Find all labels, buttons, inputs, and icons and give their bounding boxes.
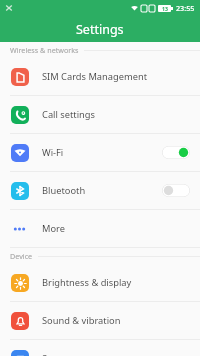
staticText: Call settings (42, 108, 190, 121)
staticText: Device (10, 251, 33, 261)
staticText: Settings (76, 21, 124, 38)
staticText: More (42, 222, 190, 235)
button[interactable]: Wi-Fi (0, 134, 200, 172)
staticText: 13 (162, 5, 168, 12)
staticText: Bluetooth (42, 184, 162, 197)
button[interactable]: SIM Cards Management (0, 58, 200, 96)
staticText: SIM Cards Management (42, 70, 190, 83)
button[interactable]: Switch off (162, 184, 190, 197)
button[interactable]: Switch on (162, 146, 190, 159)
button[interactable]: Brightness & display (0, 264, 200, 302)
staticText: Wi-Fi (42, 146, 162, 159)
staticText: Sound & vibration (42, 314, 190, 327)
button[interactable]: Bluetooth (0, 172, 200, 210)
staticText: Brightness & display (42, 276, 190, 289)
button[interactable]: Storage (0, 340, 200, 356)
button[interactable]: Call settings (0, 96, 200, 134)
staticText: Storage (42, 352, 190, 356)
button[interactable]: More (0, 210, 200, 248)
staticText: 23:55 (176, 3, 195, 13)
staticText: Wireless & networks (10, 45, 79, 55)
button[interactable]: Sound & vibration (0, 302, 200, 340)
